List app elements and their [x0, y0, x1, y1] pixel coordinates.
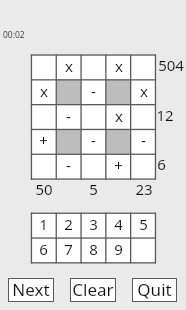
staticText: 6 — [39, 239, 48, 259]
button[interactable]: Cell row 3 column 2 — [56, 105, 81, 130]
button[interactable]: Cell row 3 column 5 — [131, 105, 156, 130]
staticText: 23 — [135, 179, 153, 197]
button[interactable]: 9 — [106, 238, 131, 263]
staticText: x — [115, 56, 123, 76]
button[interactable]: 8 — [81, 238, 106, 263]
staticText: Quit — [137, 278, 172, 301]
button[interactable]: 6 — [31, 238, 56, 263]
button[interactable]: Cell row 4 column 2 — [56, 129, 81, 154]
staticText: 9 — [114, 239, 123, 259]
button[interactable]: 7 — [56, 238, 81, 263]
staticText: 504 — [158, 55, 184, 75]
button[interactable]: Cell row 2 column 5 — [131, 80, 156, 105]
button[interactable]: Cell row 4 column 5 — [131, 129, 156, 154]
staticText: - — [66, 106, 71, 126]
staticText: 6 — [157, 154, 166, 174]
staticText: - — [91, 81, 96, 101]
staticText: 00:02 — [3, 29, 25, 41]
button[interactable]: Cell row 5 column 2 — [56, 154, 81, 179]
button[interactable]: 4 — [106, 213, 131, 238]
button[interactable]: Cell row 1 column 1 — [31, 55, 56, 80]
button[interactable]: Cell row 1 column 3 — [81, 55, 106, 80]
button[interactable]: Cell row 5 column 4 — [106, 154, 131, 179]
button[interactable]: Cell row 3 column 3 — [81, 105, 106, 130]
button[interactable]: Cell row 2 column 4 — [106, 80, 131, 105]
staticText: + — [114, 155, 123, 175]
button[interactable]: 5 — [131, 213, 156, 238]
staticText: x — [140, 81, 148, 101]
button[interactable]: Cell row 5 column 1 — [31, 154, 56, 179]
button[interactable]: Cell row 2 column 1 — [31, 80, 56, 105]
staticText: 8 — [89, 239, 98, 259]
staticText: 50 — [35, 179, 53, 197]
button[interactable]: 3 — [81, 213, 106, 238]
staticText: 12 — [156, 105, 174, 125]
button[interactable]: Cell row 3 column 1 — [31, 105, 56, 130]
staticText: Next — [12, 278, 50, 301]
staticText: x — [65, 56, 73, 76]
button[interactable]: Clear — [70, 278, 116, 302]
button[interactable]: Cell row 2 column 3 — [81, 80, 106, 105]
button[interactable]: Cell row 4 column 3 — [81, 129, 106, 154]
staticText: - — [141, 130, 146, 150]
button[interactable]: Cell row 4 column 4 — [106, 129, 131, 154]
staticText: x — [115, 106, 123, 126]
button[interactable]: Cell row 1 column 4 — [106, 55, 131, 80]
button[interactable]: Cell row 5 column 3 — [81, 154, 106, 179]
staticText: - — [66, 155, 71, 175]
staticText: 5 — [139, 214, 148, 234]
staticText: 4 — [114, 214, 123, 234]
button[interactable]: Cell row 3 column 4 — [106, 105, 131, 130]
button[interactable]: Cell row 2 column 2 — [56, 80, 81, 105]
staticText: - — [91, 130, 96, 150]
staticText: Clear — [72, 278, 114, 301]
button[interactable]: 2 — [56, 213, 81, 238]
staticText: + — [39, 130, 48, 150]
button[interactable]: Cell row 1 column 5 — [131, 55, 156, 80]
button[interactable]: Next — [8, 278, 54, 302]
staticText: 2 — [64, 214, 73, 234]
button[interactable]: 1 — [31, 213, 56, 238]
staticText: 5 — [89, 179, 98, 197]
staticText: x — [40, 81, 48, 101]
button[interactable]: Cell row 4 column 1 — [31, 129, 56, 154]
button[interactable]: Cell row 1 column 2 — [56, 55, 81, 80]
button[interactable]: Cell row 5 column 5 — [131, 154, 156, 179]
button[interactable]: Empty key — [131, 238, 156, 263]
staticText: 3 — [89, 214, 98, 234]
staticText: 1 — [39, 214, 48, 234]
button[interactable]: Quit — [132, 278, 177, 302]
staticText: 7 — [64, 239, 73, 259]
